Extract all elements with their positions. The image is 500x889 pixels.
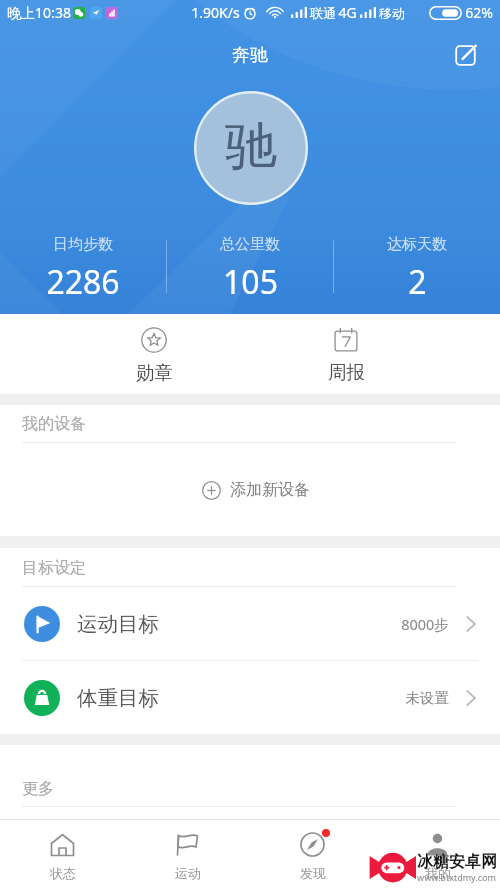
staticText: 105 (223, 260, 278, 303)
staticText: 日均步数 (53, 235, 113, 254)
button[interactable]: 运动目标 (0, 587, 500, 660)
button[interactable]: 体重目标 (0, 661, 500, 734)
button[interactable]: 添加新设备 (0, 443, 500, 536)
staticText: 达标天数 (387, 235, 447, 254)
staticText: 周报 (328, 361, 365, 384)
staticText: www.btxtdmy.com (417, 871, 496, 883)
staticText: 1.90K/s (191, 3, 240, 22)
staticText: 2286 (46, 260, 120, 303)
button[interactable]: 驰 (194, 91, 308, 205)
staticText: 驰 (225, 114, 277, 180)
staticText: 目标设定 (22, 558, 86, 578)
staticText: 勋章 (136, 361, 173, 384)
staticText: 体重目标 (77, 685, 159, 711)
button[interactable]: 勋章 (58, 314, 250, 384)
staticText: 总公里数 (220, 235, 280, 254)
button[interactable]: 状态 (0, 819, 125, 881)
staticText: 奔驰 (232, 44, 268, 67)
button[interactable]: 运动 (125, 819, 250, 881)
staticText: 发现 (300, 865, 326, 881)
button[interactable]: 我的 (375, 819, 500, 881)
button[interactable]: 周报 (250, 314, 442, 384)
staticText: 运动 (175, 865, 201, 881)
button[interactable]: 发现 (250, 819, 375, 881)
staticText: 4G (338, 3, 357, 22)
staticText: 移动 (379, 5, 405, 21)
staticText: 晚上10:38 (7, 3, 71, 22)
staticText: 冰糖安卓网 (417, 852, 497, 872)
button[interactable]: Edit profile (452, 42, 478, 68)
staticText: 62% (465, 3, 493, 22)
staticText: 添加新设备 (230, 480, 310, 500)
staticText: 2 (408, 260, 427, 303)
staticText: 运动目标 (77, 611, 159, 637)
staticText: 状态 (50, 865, 76, 881)
staticText: 未设置 (405, 689, 449, 707)
staticText: 我的设备 (22, 414, 86, 434)
staticText: 联通 (310, 5, 336, 21)
staticText: 8000步 (401, 614, 449, 634)
staticText: 我的 (425, 865, 451, 881)
staticText: 更多 (22, 779, 54, 799)
